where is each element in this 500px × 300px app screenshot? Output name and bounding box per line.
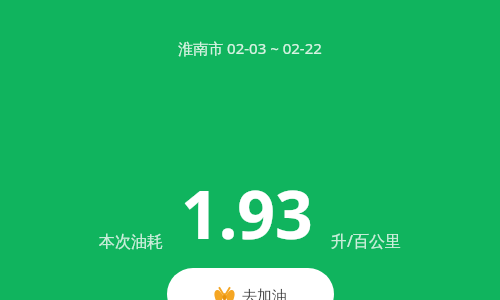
staticText: 1.93 <box>181 168 313 258</box>
staticText: 去加油 <box>242 287 287 300</box>
staticText: 淮南市 02-03 ~ 02-22 <box>178 38 322 58</box>
staticText: 本次油耗 <box>99 232 163 252</box>
staticText: 升/百公里 <box>331 230 401 252</box>
button[interactable]: 淮南市 02-03 ~ 02-22 <box>0 38 500 58</box>
button[interactable]: 加油记录 <box>167 268 334 300</box>
